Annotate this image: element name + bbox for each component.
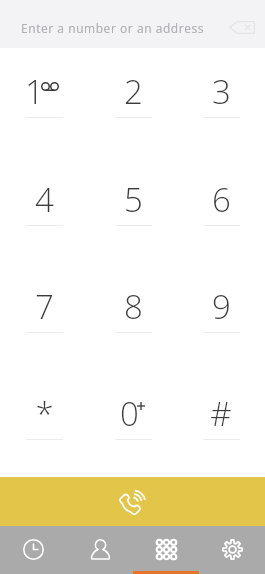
button[interactable]: 8 [89, 263, 177, 370]
staticText: 4 [35, 177, 54, 222]
button[interactable]: 7 [0, 263, 89, 370]
button[interactable]: Enter a number or an address [0, 0, 265, 48]
button[interactable]: Dialpad [133, 526, 199, 574]
staticText: 1 [25, 69, 44, 114]
button[interactable]: Call [0, 477, 265, 526]
staticText: 5 [124, 177, 143, 222]
button[interactable]: Settings [199, 526, 265, 574]
button[interactable]: # [177, 370, 265, 477]
staticText: 3 [212, 69, 231, 114]
button[interactable]: Backspace [229, 21, 255, 34]
staticText: 9 [212, 284, 231, 329]
button[interactable]: 6 [177, 156, 265, 263]
staticText: 7 [35, 284, 54, 329]
staticText: 6 [212, 177, 231, 222]
button[interactable]: * [0, 370, 89, 477]
button[interactable]: 5 [89, 156, 177, 263]
button[interactable]: 3 [177, 48, 265, 156]
button[interactable]: Recents [0, 526, 67, 574]
staticText: Enter a number or an address [21, 20, 204, 36]
button[interactable]: Contacts [67, 526, 133, 574]
button[interactable]: 4 [0, 156, 89, 263]
staticText: 2 [124, 69, 143, 114]
button[interactable]: 2 [89, 48, 177, 156]
button[interactable]: 9 [177, 263, 265, 370]
staticText: 0 [120, 391, 139, 436]
staticText: 8 [124, 284, 143, 329]
staticText: * [35, 391, 54, 436]
staticText: # [210, 391, 232, 436]
button[interactable]: 1 [0, 48, 89, 156]
button[interactable]: 0 [89, 370, 177, 477]
